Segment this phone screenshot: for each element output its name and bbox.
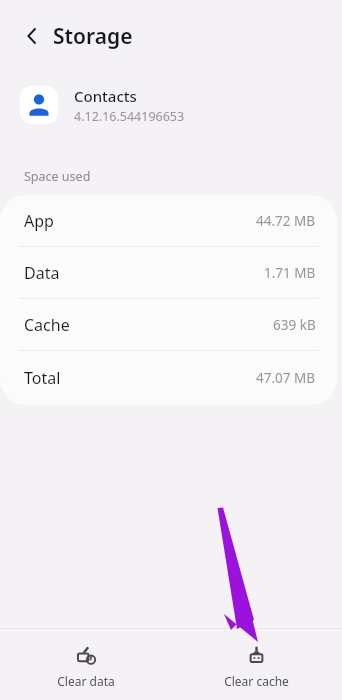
staticText: 4.12.16.544196653 xyxy=(74,108,185,125)
staticText: 1.71 MB xyxy=(264,264,316,282)
staticText: App xyxy=(24,210,54,232)
staticText: Data xyxy=(24,262,60,284)
button[interactable]: Total xyxy=(0,351,337,405)
staticText: Clear cache xyxy=(224,673,289,689)
staticText: 44.72 MB xyxy=(256,212,316,230)
staticText: 47.07 MB xyxy=(256,369,316,387)
staticText: Clear data xyxy=(57,673,115,689)
staticText: Space used xyxy=(24,168,91,185)
button[interactable]: Clear cache xyxy=(171,628,342,700)
staticText: Contacts xyxy=(74,86,137,106)
staticText: 639 kB xyxy=(273,316,316,334)
button[interactable]: Cache xyxy=(0,299,337,351)
staticText: Cache xyxy=(24,314,70,336)
button[interactable]: Data xyxy=(0,247,337,299)
staticText: Total xyxy=(24,367,61,389)
button[interactable]: Contacts xyxy=(0,72,342,138)
staticText: Storage xyxy=(53,22,133,51)
button[interactable]: App xyxy=(0,195,337,247)
button[interactable]: Back xyxy=(14,18,50,54)
button[interactable]: Clear data xyxy=(0,628,171,700)
